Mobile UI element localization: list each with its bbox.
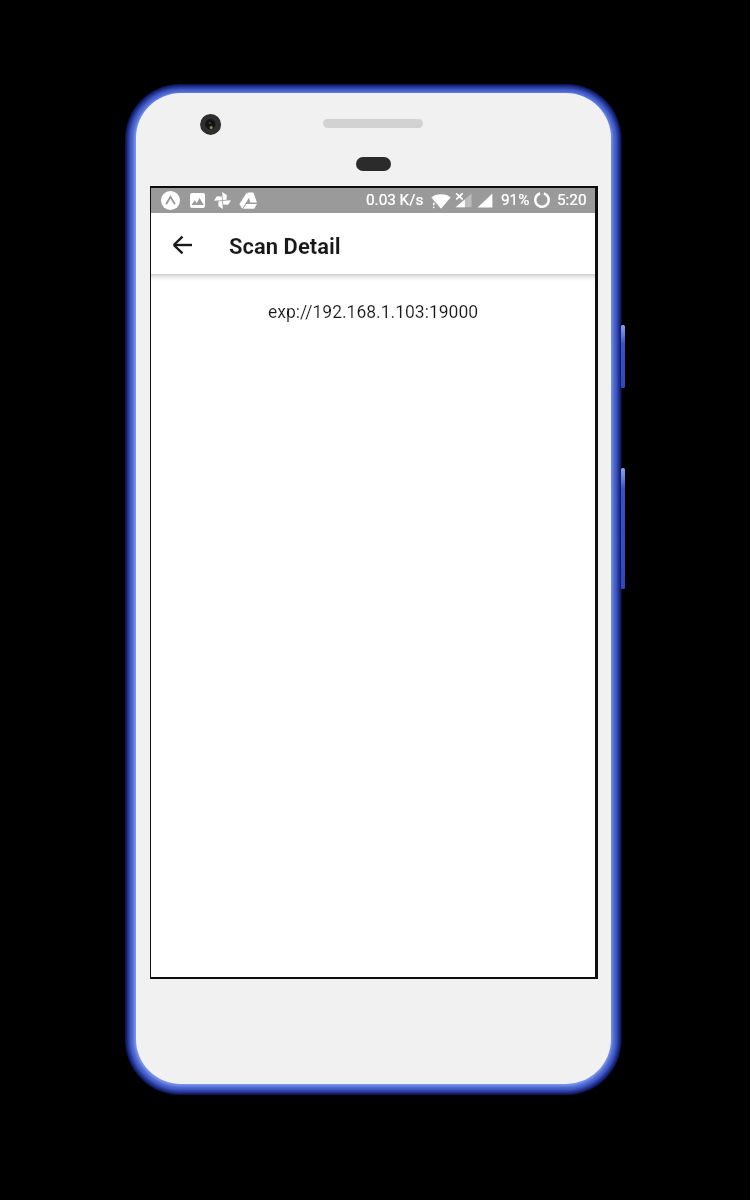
- staticText: 5:20: [557, 191, 587, 209]
- button[interactable]: Back: [156, 221, 208, 268]
- staticText: 0.03 K/s: [366, 191, 424, 209]
- staticText: Scan Detail: [229, 234, 341, 260]
- staticText: 91%: [501, 191, 530, 209]
- staticText: exp://192.168.1.103:19000: [151, 302, 595, 323]
